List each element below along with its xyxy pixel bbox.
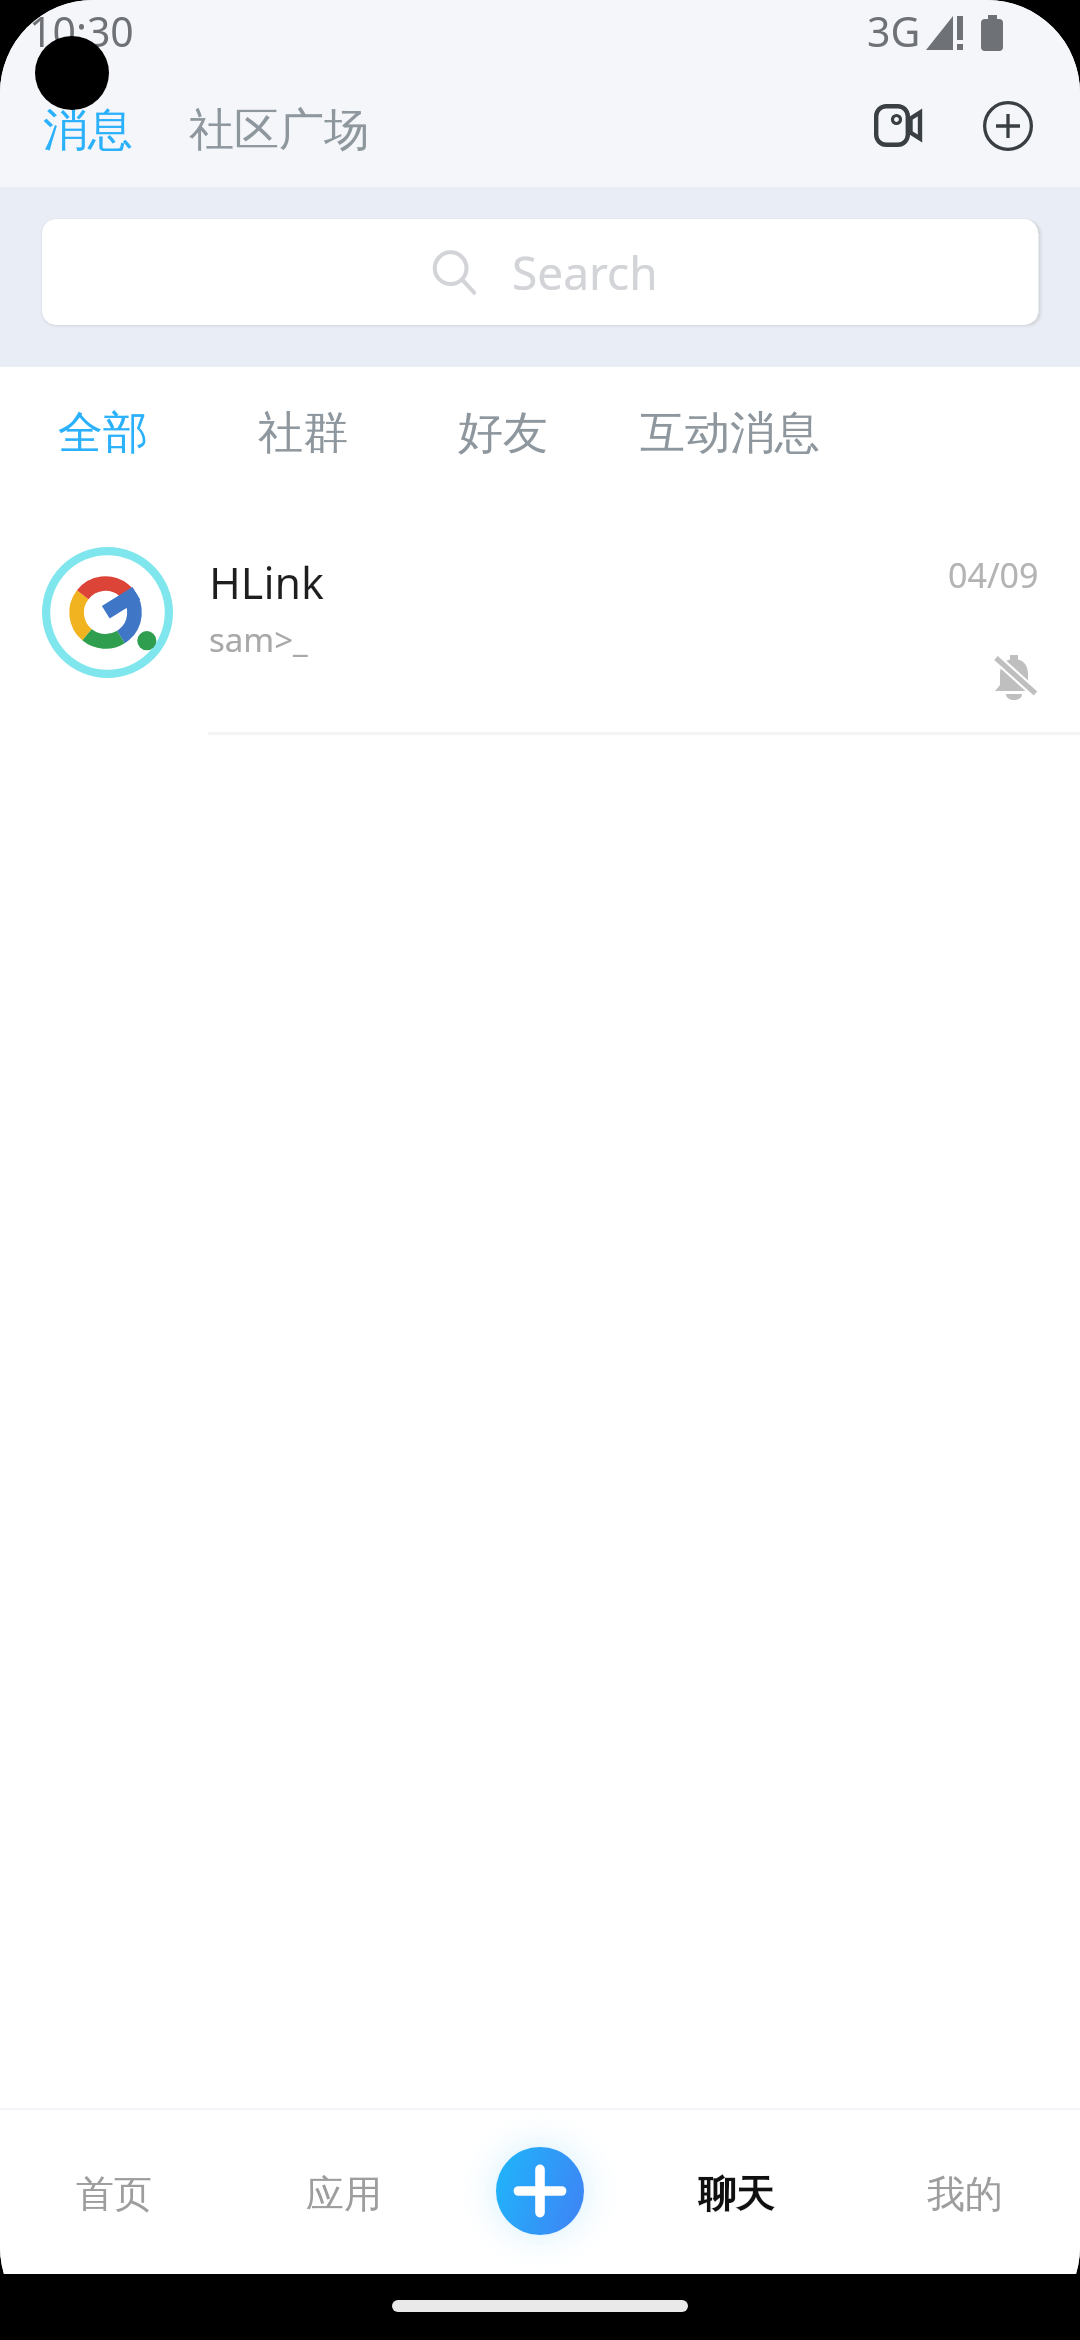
staticText: 首页 [76,2170,152,2218]
button[interactable]: 社区广场 [161,94,397,167]
staticText: 社群 [258,405,348,462]
staticText: 我的 [927,2170,1003,2218]
button[interactable]: 社群 [232,389,374,478]
button[interactable]: 好友 [432,389,574,478]
staticText: Search [512,241,658,304]
button[interactable]: 首页 [29,2113,199,2275]
staticText: sam>_ [209,617,308,662]
staticText: 3G [867,3,921,59]
staticText: 全部 [58,405,148,462]
button[interactable]: New message [496,2147,584,2235]
staticText: 社区广场 [189,102,369,159]
button[interactable]: HLink [0,512,1080,734]
staticText: 互动消息 [640,405,820,462]
button[interactable]: 应用 [259,2113,429,2275]
button[interactable]: Search [42,219,1038,325]
staticText: 10:30 [29,3,134,59]
button[interactable]: 全部 [32,389,174,478]
staticText: 好友 [458,405,548,462]
button[interactable]: 我的 [880,2113,1050,2275]
button[interactable]: 互动消息 [614,389,846,478]
button[interactable]: 消息 [0,94,161,167]
button[interactable]: Video call [857,83,941,167]
staticText: HLink [209,553,325,612]
staticText: 聊天 [698,2170,774,2218]
staticText: 消息 [43,102,133,159]
button[interactable]: 聊天 [651,2113,821,2275]
button[interactable]: Add [966,84,1050,168]
button[interactable]: Notifications muted [985,647,1047,709]
staticText: 04/09 [948,552,1039,598]
staticText: 应用 [306,2170,382,2218]
